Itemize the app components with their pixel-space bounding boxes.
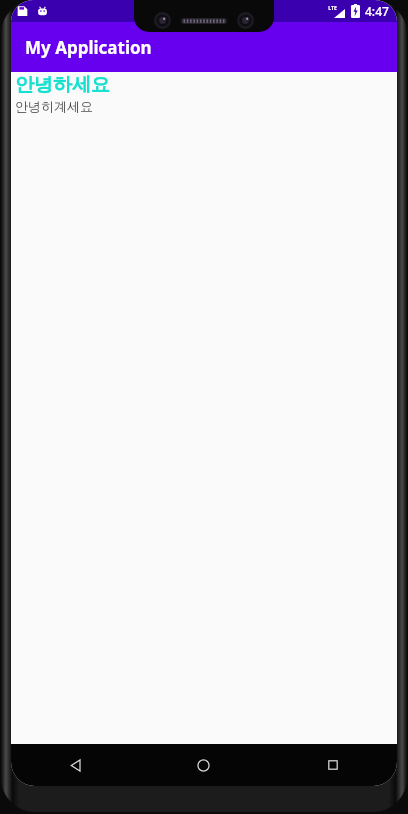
staticText: 4:47 bbox=[365, 3, 389, 19]
button[interactable]: Recent apps bbox=[268, 744, 397, 786]
button[interactable]: 안녕히계세요 bbox=[15, 98, 93, 114]
staticText: LTE bbox=[328, 5, 337, 12]
button[interactable]: 안녕하세요 bbox=[15, 73, 110, 97]
button[interactable]: Home bbox=[139, 744, 268, 786]
button[interactable]: Back bbox=[11, 744, 139, 786]
staticText: My Application bbox=[25, 36, 152, 59]
